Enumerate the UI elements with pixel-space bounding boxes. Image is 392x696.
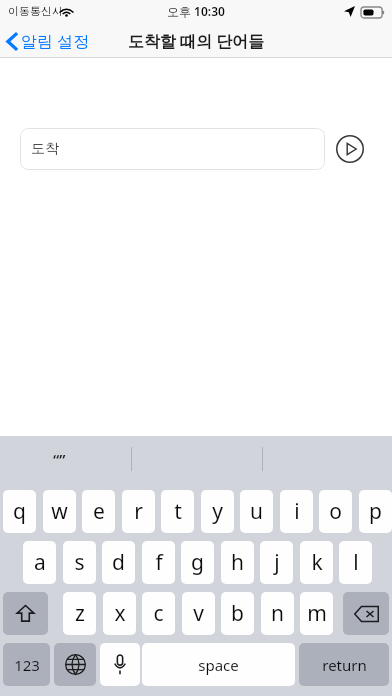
staticText: q (13, 497, 26, 526)
button[interactable]: g (181, 541, 214, 584)
staticText: f (155, 548, 163, 577)
staticText: “” (53, 449, 66, 469)
button[interactable]: e (82, 490, 115, 533)
staticText: 123 (14, 655, 40, 675)
staticText: space (198, 655, 239, 675)
button[interactable]: f (142, 541, 175, 584)
button[interactable]: Switch keyboard (54, 643, 96, 686)
button[interactable]: w (43, 490, 76, 533)
staticText: x (114, 599, 126, 628)
button[interactable]: Dictate (100, 643, 140, 686)
staticText: 오후 10:30 (167, 3, 225, 19)
staticText: h (231, 548, 244, 577)
staticText: l (353, 548, 359, 577)
staticText: m (307, 599, 327, 628)
staticText: return (322, 655, 367, 675)
button[interactable]: Backspace (343, 592, 389, 635)
button[interactable]: return (299, 643, 389, 686)
button[interactable]: u (240, 490, 273, 533)
staticText: u (250, 497, 263, 526)
staticText: w (51, 497, 68, 526)
button[interactable]: r (122, 490, 155, 533)
staticText: i (294, 497, 300, 526)
button[interactable]: Shift (3, 592, 48, 635)
button[interactable]: h (221, 541, 254, 584)
staticText: k (311, 548, 323, 577)
staticText: a (34, 548, 46, 577)
button[interactable]: 123 (3, 643, 50, 686)
staticText: c (153, 599, 164, 628)
staticText: 도착할 때의 단어들 (128, 30, 265, 52)
button[interactable]: p (359, 490, 392, 533)
button[interactable]: 알림 설정 (0, 28, 98, 54)
button[interactable]: d (102, 541, 135, 584)
staticText: t (174, 497, 182, 526)
button[interactable]: v (182, 592, 215, 635)
button[interactable]: c (142, 592, 175, 635)
staticText: j (274, 548, 280, 577)
staticText: p (369, 497, 382, 526)
button[interactable]: Play (334, 133, 366, 165)
staticText: v (193, 599, 204, 628)
button[interactable]: q (3, 490, 36, 533)
button[interactable]: i (280, 490, 313, 533)
button[interactable]: n (261, 592, 294, 635)
button[interactable]: x (103, 592, 136, 635)
button[interactable]: y (201, 490, 234, 533)
staticText: b (231, 599, 244, 628)
staticText: o (329, 497, 342, 526)
button[interactable]: m (300, 592, 333, 635)
button[interactable]: a (23, 541, 56, 584)
button[interactable]: t (161, 490, 194, 533)
button[interactable]: o (319, 490, 352, 533)
staticText: g (191, 548, 204, 577)
staticText: r (134, 497, 143, 526)
staticText: n (271, 599, 284, 628)
button[interactable]: space (142, 643, 295, 686)
button[interactable]: b (221, 592, 254, 635)
staticText: z (75, 599, 85, 628)
staticText: e (93, 497, 105, 526)
button[interactable]: 도착 (20, 128, 325, 170)
staticText: d (112, 548, 125, 577)
staticText: s (74, 548, 85, 577)
button[interactable]: l (339, 541, 372, 584)
staticText: 도착 (31, 140, 59, 158)
button[interactable]: j (260, 541, 293, 584)
button[interactable]: s (63, 541, 96, 584)
staticText: 알림 설정 (21, 30, 90, 52)
staticText: 이동통신사 (8, 4, 63, 18)
button[interactable]: k (300, 541, 333, 584)
staticText: y (212, 497, 223, 526)
button[interactable]: z (63, 592, 96, 635)
